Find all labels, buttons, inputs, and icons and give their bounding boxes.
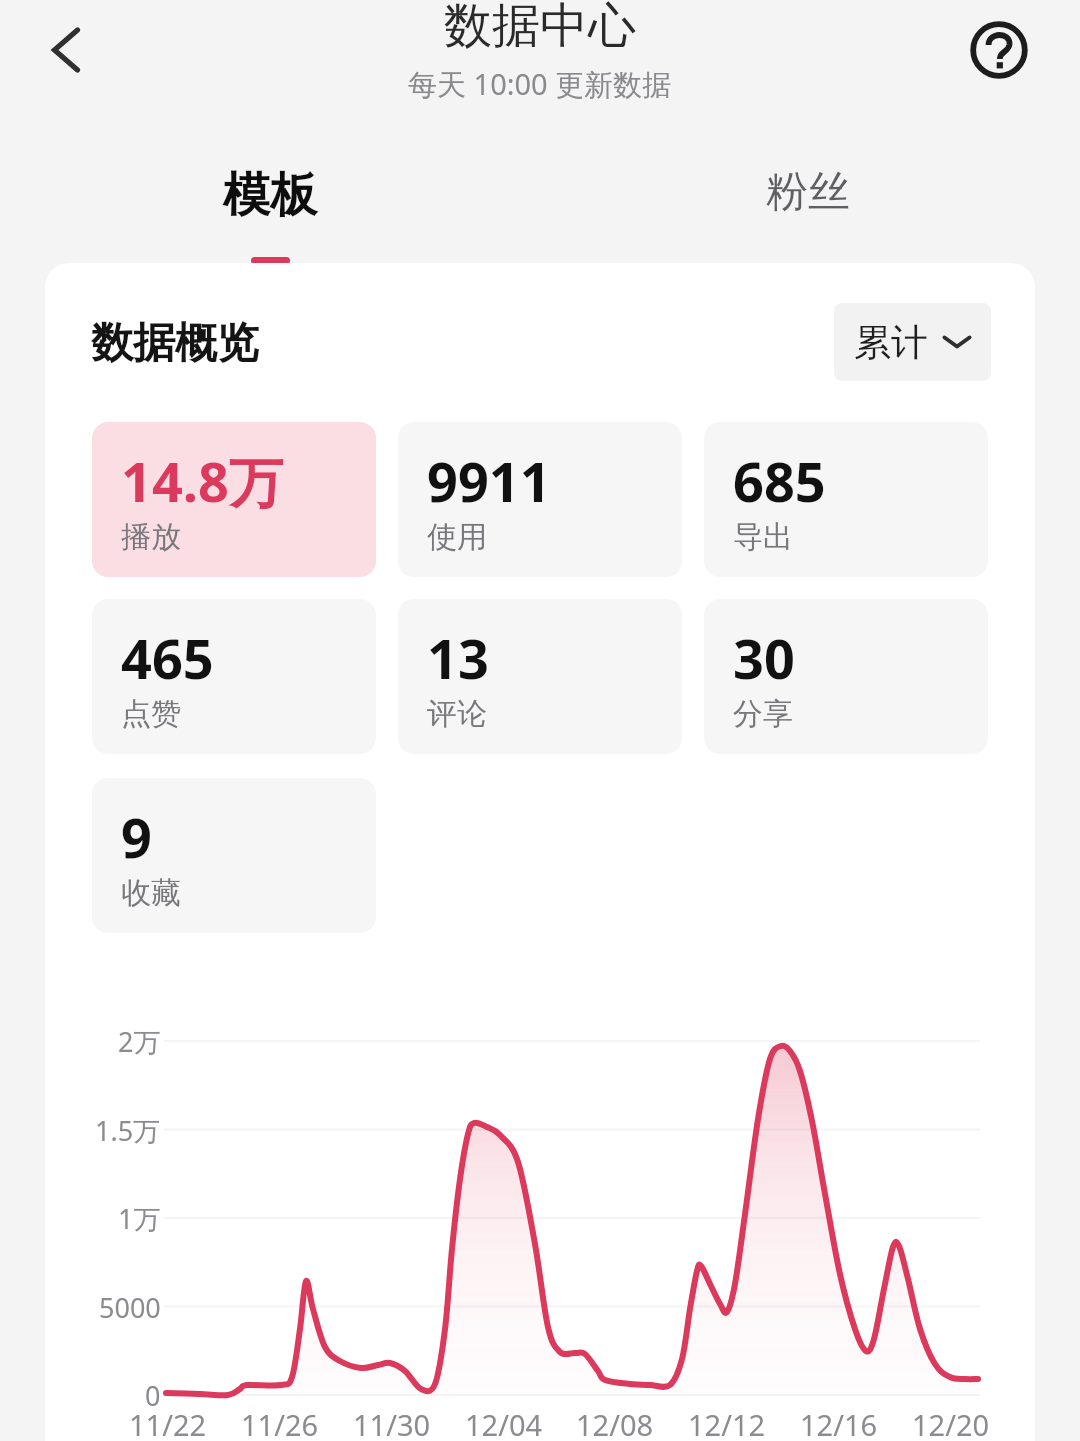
staticText: 30 bbox=[733, 621, 795, 695]
button[interactable]: 累计 bbox=[834, 303, 991, 381]
staticText: 模板 bbox=[223, 166, 317, 225]
staticText: 11/22 bbox=[129, 1405, 207, 1441]
staticText: 使用 bbox=[427, 518, 487, 556]
staticText: 11/30 bbox=[353, 1405, 431, 1441]
staticText: 点赞 bbox=[121, 695, 181, 733]
button[interactable]: 粉丝 bbox=[738, 166, 878, 258]
button[interactable]: Back bbox=[16, 0, 116, 100]
button[interactable]: 14.8万 bbox=[92, 422, 376, 577]
button[interactable]: 685 bbox=[704, 422, 988, 577]
staticText: 12/16 bbox=[800, 1405, 878, 1441]
staticText: 粉丝 bbox=[766, 166, 850, 219]
staticText: 9911 bbox=[427, 444, 551, 518]
button[interactable]: 9 bbox=[92, 778, 376, 933]
staticText: 14.8万 bbox=[121, 444, 283, 518]
staticText: 12/12 bbox=[688, 1405, 766, 1441]
staticText: 2万 bbox=[118, 1023, 161, 1060]
button[interactable]: 模板 bbox=[200, 166, 340, 272]
button[interactable]: 13 bbox=[398, 599, 682, 754]
button[interactable]: Help bbox=[949, 0, 1049, 100]
staticText: 12/20 bbox=[912, 1405, 990, 1441]
button[interactable]: 465 bbox=[92, 599, 376, 754]
staticText: 评论 bbox=[427, 695, 487, 733]
staticText: 数据中心 bbox=[444, 0, 636, 56]
button[interactable]: 9911 bbox=[398, 422, 682, 577]
staticText: 0 bbox=[145, 1377, 161, 1414]
staticText: 1.5万 bbox=[95, 1112, 161, 1149]
staticText: 685 bbox=[733, 444, 826, 518]
staticText: 9 bbox=[121, 800, 152, 874]
staticText: 分享 bbox=[733, 695, 793, 733]
staticText: 播放 bbox=[121, 518, 181, 556]
staticText: 导出 bbox=[733, 518, 793, 556]
staticText: 每天 10:00 更新数据 bbox=[408, 64, 672, 104]
staticText: 13 bbox=[427, 621, 489, 695]
staticText: 12/08 bbox=[576, 1405, 654, 1441]
staticText: 11/26 bbox=[241, 1405, 319, 1441]
staticText: 收藏 bbox=[121, 874, 181, 912]
button[interactable]: 30 bbox=[704, 599, 988, 754]
staticText: 5000 bbox=[99, 1289, 161, 1326]
staticText: 累计 bbox=[854, 319, 928, 366]
staticText: 465 bbox=[121, 621, 214, 695]
staticText: 数据概览 bbox=[91, 317, 259, 370]
staticText: 1万 bbox=[118, 1200, 161, 1237]
staticText: 12/04 bbox=[465, 1405, 543, 1441]
